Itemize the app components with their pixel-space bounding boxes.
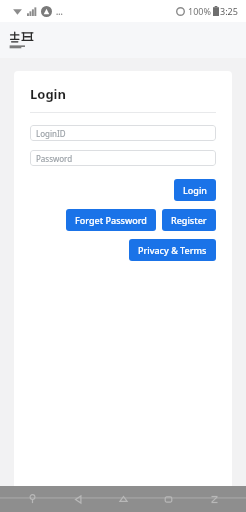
button[interactable]: LoginID [30, 125, 216, 141]
button[interactable]: Assistant [19, 486, 45, 512]
button[interactable]: Login [174, 179, 216, 201]
button[interactable]: Privacy & Terms [129, 239, 216, 261]
staticText: Login [183, 184, 207, 196]
staticText: Forget Password [75, 214, 147, 226]
staticText: Privacy & Terms [138, 244, 207, 256]
button[interactable]: Recents [155, 486, 181, 512]
staticText: Password [36, 153, 73, 164]
staticText: Register [171, 214, 207, 226]
staticText: LoginID [36, 128, 66, 139]
button[interactable]: Fullscreen [201, 486, 227, 512]
button[interactable]: Home [110, 486, 136, 512]
staticText: 3:25 [220, 5, 238, 17]
staticText: 100% [188, 5, 211, 17]
button[interactable]: Back [65, 486, 91, 512]
button[interactable]: Forget Password [66, 209, 156, 231]
button[interactable]: Password [30, 150, 216, 166]
staticText: ... [56, 6, 63, 17]
button[interactable]: Register [162, 209, 216, 231]
staticText: Login [30, 85, 66, 103]
